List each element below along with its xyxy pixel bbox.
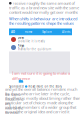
staticText: individual members of a wider group that… (5, 104, 76, 114)
staticText: Sponsored (9, 85, 24, 88)
staticText: traffic as a brand new site with the sam… (9, 5, 79, 10)
staticText: Read more on the story (28, 85, 61, 88)
staticText: Home (25, 30, 33, 34)
staticText: Thanks for the quick turn (18, 47, 52, 51)
button[interactable]: AD (9, 28, 72, 35)
staticText: Explore (42, 30, 52, 34)
staticText: AD (11, 30, 15, 34)
staticText: Dave (18, 36, 25, 39)
staticText: the effect is mostly about timing rather… (5, 95, 80, 106)
staticText: the resulting patterns shape the values (9, 21, 74, 26)
staticText: Alerts (62, 30, 70, 34)
staticText: receive roughly the same amount of (13, 1, 75, 6)
staticText: particular set of choices made along the… (5, 100, 73, 110)
staticText: around the original idea and carried it … (5, 109, 69, 114)
button[interactable]: Dave (9, 35, 72, 43)
staticText: and yet the overall balance remains much… (5, 86, 77, 97)
staticText: for those who arrive later in the cycle,… (5, 91, 70, 101)
button[interactable]: Priya (9, 43, 72, 51)
staticText: Looks like it is ready (18, 39, 45, 43)
staticText: I am not sure it is going to make a diff… (12, 70, 70, 81)
staticText: When shifts in behaviour are introduced (9, 16, 77, 21)
staticText: Priya (18, 44, 25, 47)
staticText: content would normally get over months (9, 10, 78, 15)
